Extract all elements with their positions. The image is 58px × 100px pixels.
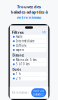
staticText: OK [42, 30, 46, 34]
button[interactable]: 5 à 10 km [11, 62, 47, 66]
staticText: Difficile [16, 44, 27, 47]
button[interactable]: Voir 24 balades [31, 88, 46, 97]
staticText: Durée [12, 68, 21, 71]
staticText: Voir 24 balades [33, 89, 44, 96]
button[interactable]: 2 h [11, 76, 47, 80]
staticText: 5 à 10 km [16, 62, 29, 66]
staticText: Réinitialiser [12, 91, 29, 94]
button[interactable]: 1 h [11, 72, 47, 76]
staticText: Trouvez des [17, 4, 41, 9]
button[interactable]: Facile [11, 35, 47, 39]
staticText: Distance [12, 54, 24, 57]
staticText: Facile [16, 35, 23, 38]
button[interactable]: Réinitialiser [12, 91, 29, 94]
button[interactable]: Difficile [11, 44, 47, 48]
staticText: Moins de 5 km [16, 58, 36, 62]
button[interactable]: Intermédiaire [11, 39, 47, 43]
staticText: votre niveau [16, 15, 41, 20]
staticText: Intermédiaire [16, 39, 35, 43]
button[interactable]: Moins de 5 km [11, 58, 47, 62]
staticText: Expert [16, 48, 24, 52]
staticText: balades adaptées à [10, 9, 47, 15]
staticText: 1 h [16, 72, 21, 76]
staticText: Filtres [12, 30, 24, 35]
button[interactable]: Expert [11, 48, 47, 52]
staticText: 2 h [16, 77, 21, 80]
